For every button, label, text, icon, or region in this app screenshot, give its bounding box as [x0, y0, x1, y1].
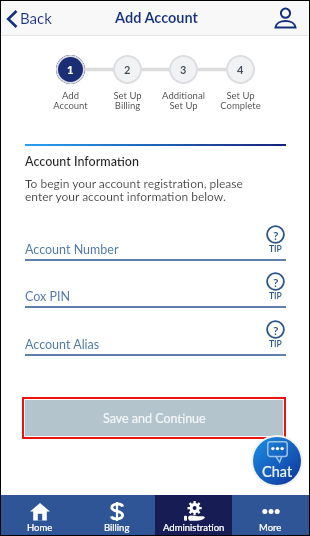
- button[interactable]: Billing: [78, 495, 155, 535]
- staticText: TIP: [269, 339, 282, 349]
- button[interactable]: Profile: [275, 8, 296, 28]
- button[interactable]: Tip: [266, 225, 285, 254]
- button[interactable]: Tip: [266, 272, 285, 301]
- staticText: Account Number: [25, 242, 119, 257]
- staticText: 3: [180, 63, 187, 76]
- button[interactable]: More: [232, 495, 309, 535]
- staticText: 1: [67, 63, 74, 76]
- button[interactable]: Save and Continue: [25, 400, 283, 436]
- staticText: Add Account: [115, 9, 198, 26]
- button[interactable]: 1: [40, 55, 100, 111]
- button[interactable]: Administration: [155, 495, 232, 535]
- button[interactable]: Home: [1, 495, 78, 535]
- staticText: Add Account: [53, 90, 88, 111]
- staticText: To begin your account registration, plea…: [25, 176, 243, 203]
- staticText: Set Up Billing: [113, 90, 142, 111]
- staticText: Home: [27, 522, 53, 533]
- staticText: Chat: [262, 463, 293, 480]
- staticText: Additional Set Up: [162, 90, 205, 111]
- staticText: Billing: [104, 522, 130, 533]
- staticText: 2: [124, 63, 131, 76]
- staticText: TIP: [269, 244, 282, 254]
- staticText: Account Information: [25, 154, 139, 169]
- staticText: Account Alias: [25, 337, 100, 352]
- staticText: Cox PIN: [25, 289, 71, 304]
- staticText: ?: [273, 228, 279, 242]
- staticText: Administration: [163, 522, 225, 533]
- staticText: ?: [273, 275, 279, 289]
- button[interactable]: Tip: [266, 320, 285, 349]
- button[interactable]: 4: [210, 55, 270, 111]
- staticText: More: [259, 522, 282, 533]
- staticText: ?: [273, 323, 279, 337]
- staticText: 4: [237, 63, 244, 76]
- button[interactable]: 3: [153, 55, 213, 111]
- button[interactable]: 2: [97, 55, 157, 111]
- staticText: TIP: [269, 291, 282, 301]
- staticText: Set Up Complete: [220, 90, 261, 111]
- staticText: Back: [20, 9, 52, 27]
- button[interactable]: Chat: [253, 437, 301, 485]
- button[interactable]: Back: [7, 1, 52, 36]
- staticText: Save and Continue: [103, 411, 206, 426]
